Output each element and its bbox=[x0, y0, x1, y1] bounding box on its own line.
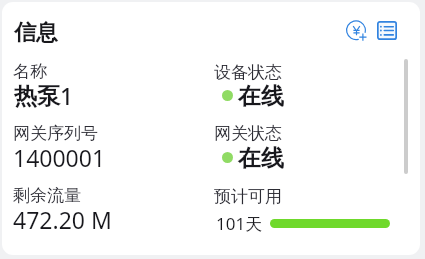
staticText: 热泵 bbox=[14, 82, 60, 111]
button[interactable]: 账单记录 bbox=[372, 15, 400, 43]
staticText: 网关序列号 bbox=[13, 123, 98, 144]
staticText: 472.20 M bbox=[13, 204, 112, 235]
staticText: 1400001 bbox=[13, 142, 106, 173]
staticText: 101天 bbox=[216, 212, 263, 235]
staticText: 剩余流量 bbox=[13, 185, 81, 206]
staticText: 信息 bbox=[14, 19, 58, 47]
staticText: 网关状态 bbox=[214, 123, 282, 144]
staticText: 在线 bbox=[238, 144, 284, 173]
staticText: 预计可用 bbox=[214, 186, 282, 207]
button[interactable]: 充值 bbox=[340, 14, 370, 44]
staticText: 1 bbox=[60, 80, 74, 111]
staticText: 在线 bbox=[238, 82, 284, 111]
staticText: 名称 bbox=[13, 61, 47, 82]
staticText: 设备状态 bbox=[214, 62, 282, 83]
